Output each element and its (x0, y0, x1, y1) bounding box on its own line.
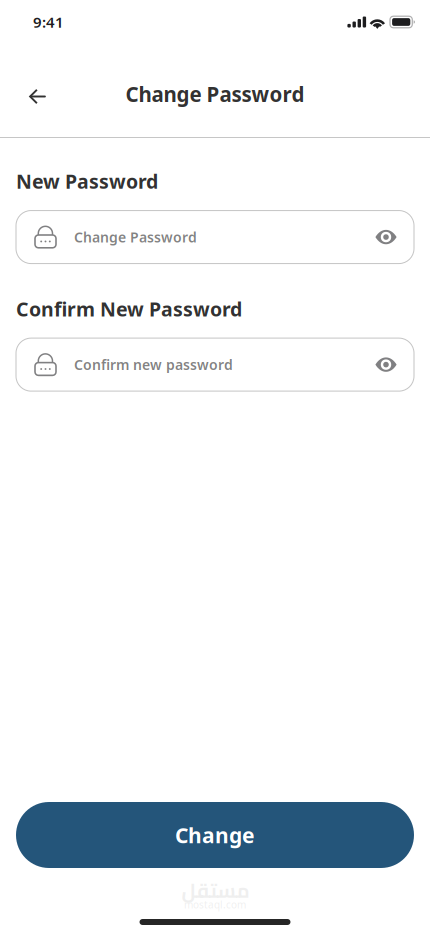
staticText: مستقل (181, 872, 249, 909)
button[interactable]: Back (16, 74, 60, 118)
staticText: Change Password (74, 227, 197, 247)
staticText: Confirm new password (74, 355, 233, 374)
button[interactable]: Show password (366, 343, 406, 387)
button[interactable]: Show password (366, 215, 406, 259)
staticText: 9:41 (33, 12, 64, 32)
staticText: New Password (16, 168, 158, 195)
button[interactable]: Change (16, 802, 414, 868)
staticText: Change Password (125, 80, 304, 108)
staticText: Confirm New Password (16, 296, 242, 322)
staticText: mostaql.com (184, 898, 246, 911)
staticText: Change (175, 821, 255, 849)
